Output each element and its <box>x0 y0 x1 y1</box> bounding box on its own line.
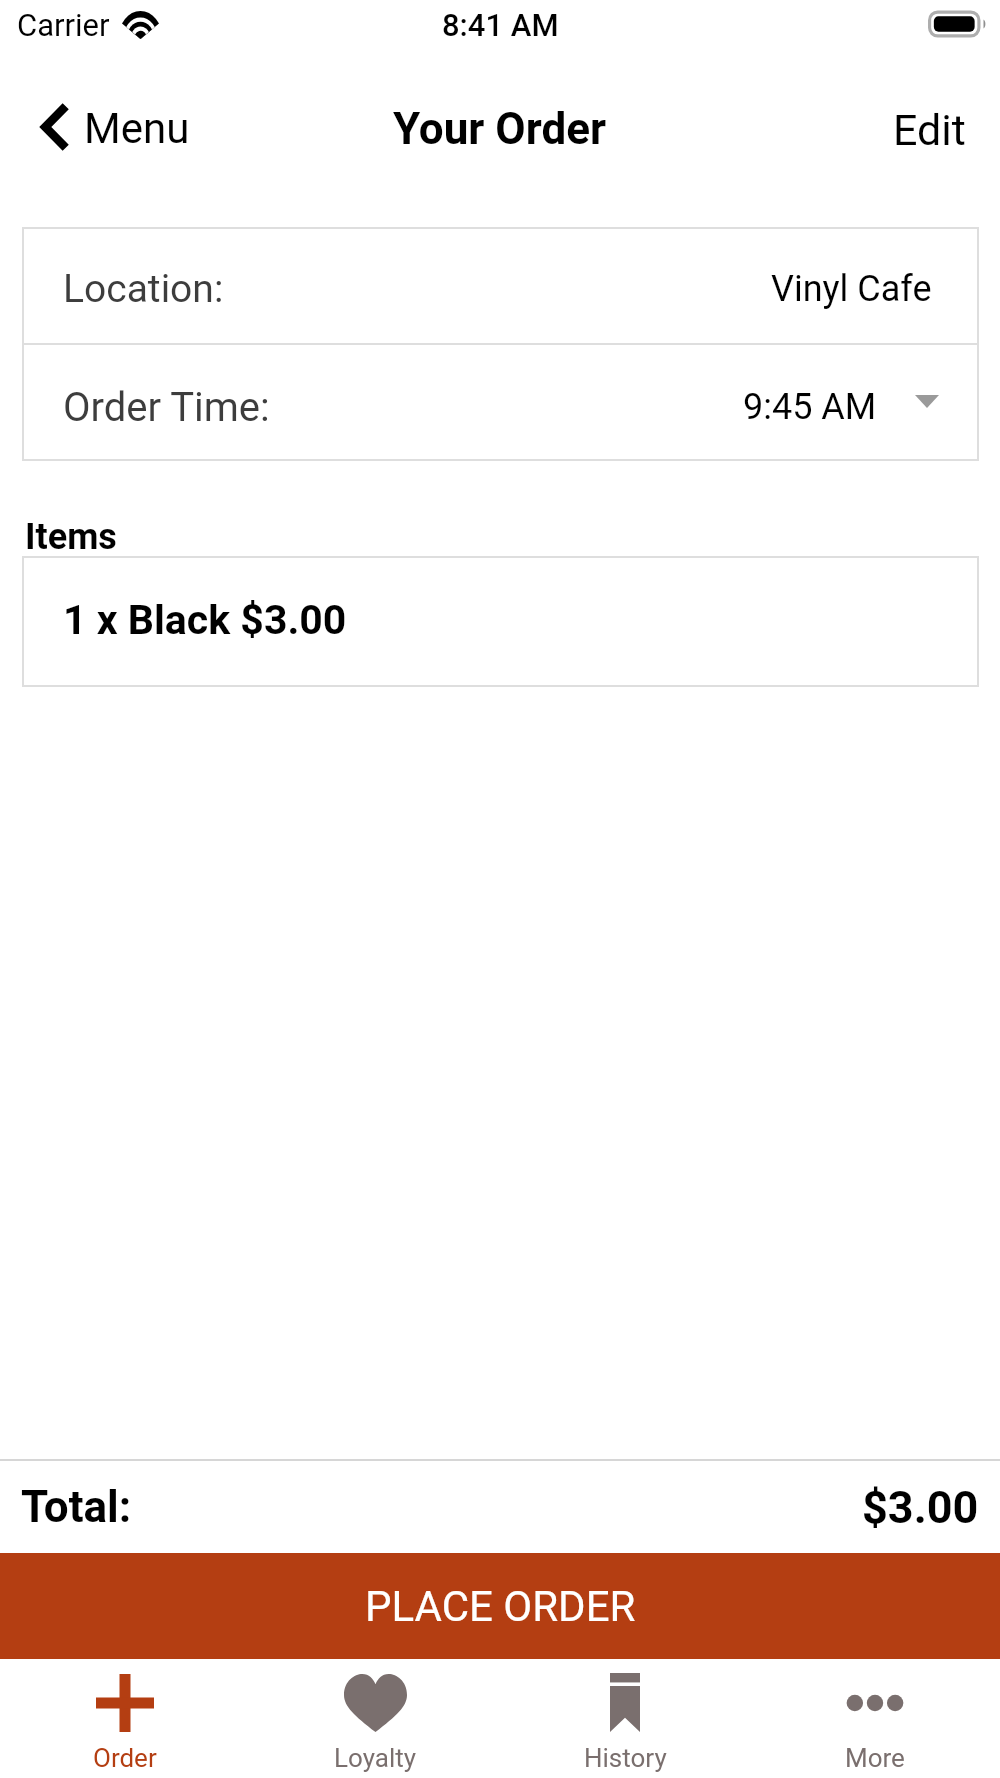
button[interactable]: History <box>500 1659 750 1778</box>
staticText: 8:41 AM <box>442 7 559 43</box>
staticText: More <box>845 1743 905 1773</box>
staticText: Order Time: <box>63 384 270 431</box>
staticText: Your Order <box>393 103 607 155</box>
staticText: 1 x Black $3.00 <box>63 596 347 644</box>
button[interactable]: Loyalty <box>250 1659 500 1778</box>
staticText: History <box>584 1743 667 1773</box>
staticText: Total: <box>21 1481 132 1533</box>
staticText: Items <box>25 516 117 558</box>
staticText: Vinyl Cafe <box>771 268 932 310</box>
button[interactable]: Edit <box>867 88 1000 166</box>
staticText: Order <box>93 1743 157 1773</box>
button[interactable]: 1 x Black $3.00 <box>24 558 977 685</box>
button[interactable]: Back to Menu <box>0 88 209 166</box>
staticText: 9:45 AM <box>743 386 877 428</box>
staticText: PLACE ORDER <box>365 1582 636 1631</box>
staticText: Edit <box>893 105 966 155</box>
button[interactable]: Order <box>0 1659 250 1778</box>
staticText: $3.00 <box>862 1481 979 1534</box>
button[interactable]: Order Time: <box>24 345 977 459</box>
button[interactable]: PLACE ORDER <box>0 1553 1000 1659</box>
staticText: Carrier <box>17 7 110 43</box>
button[interactable]: More <box>750 1659 1000 1778</box>
staticText: Location: <box>63 266 224 312</box>
button[interactable]: Location: <box>24 229 977 343</box>
staticText: Loyalty <box>334 1743 417 1773</box>
staticText: Menu <box>84 104 190 153</box>
